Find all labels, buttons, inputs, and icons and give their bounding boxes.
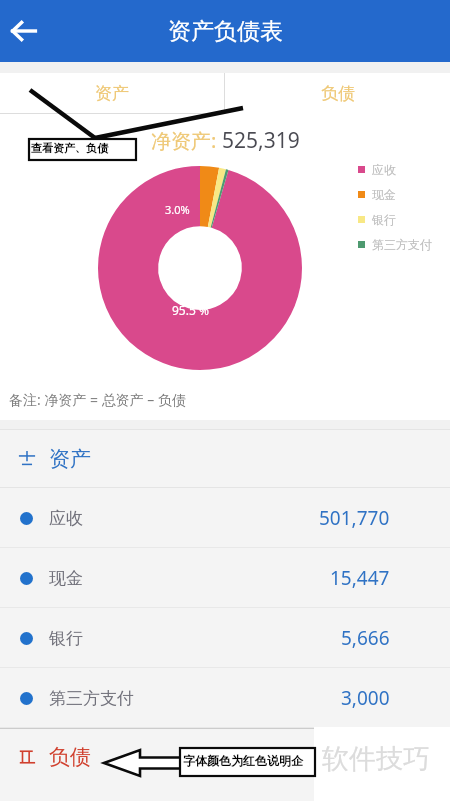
staticText: 3,000 [341,685,390,711]
staticText: 资产 [49,446,91,472]
button[interactable]: 现金 [0,548,450,608]
button[interactable]: 资产 [0,430,450,488]
button[interactable]: 负债 [225,73,450,113]
staticText: 15,447 [330,565,390,591]
button[interactable]: 负债 [0,728,450,786]
staticText: 现金 [372,187,396,202]
staticText: 应收 [372,162,396,177]
staticText: 负债 [49,744,91,770]
staticText: 银行 [49,628,83,649]
staticText: 负债 [321,83,355,104]
button[interactable]: 第三方支付 [0,668,450,728]
staticText: 第三方支付 [49,688,134,709]
staticText: 525,319 [222,126,300,155]
staticText: 净资产: [151,127,222,154]
button[interactable]: 资产 [0,73,224,113]
staticText: 银行 [372,212,396,227]
button[interactable]: 应收 [0,488,450,548]
staticText: 资产 [95,83,129,104]
staticText: 字体颜色为红色说明企 [183,753,303,768]
staticText: 现金 [49,568,83,589]
button[interactable]: Back [0,4,54,58]
staticText: 查看资产、负债 [31,141,108,155]
staticText: 95.5 % [172,302,209,318]
staticText: 5,666 [341,625,390,651]
staticText: 第三方支付 [372,237,432,252]
staticText: 3.0% [165,202,190,217]
staticText: 软件技巧 [322,742,430,776]
staticText: 资产负债表 [168,17,283,46]
staticText: 501,770 [319,505,390,531]
button[interactable]: 银行 [0,608,450,668]
staticText: 备注: 净资产 = 总资产 – 负债 [9,390,186,409]
staticText: 应收 [49,508,83,529]
